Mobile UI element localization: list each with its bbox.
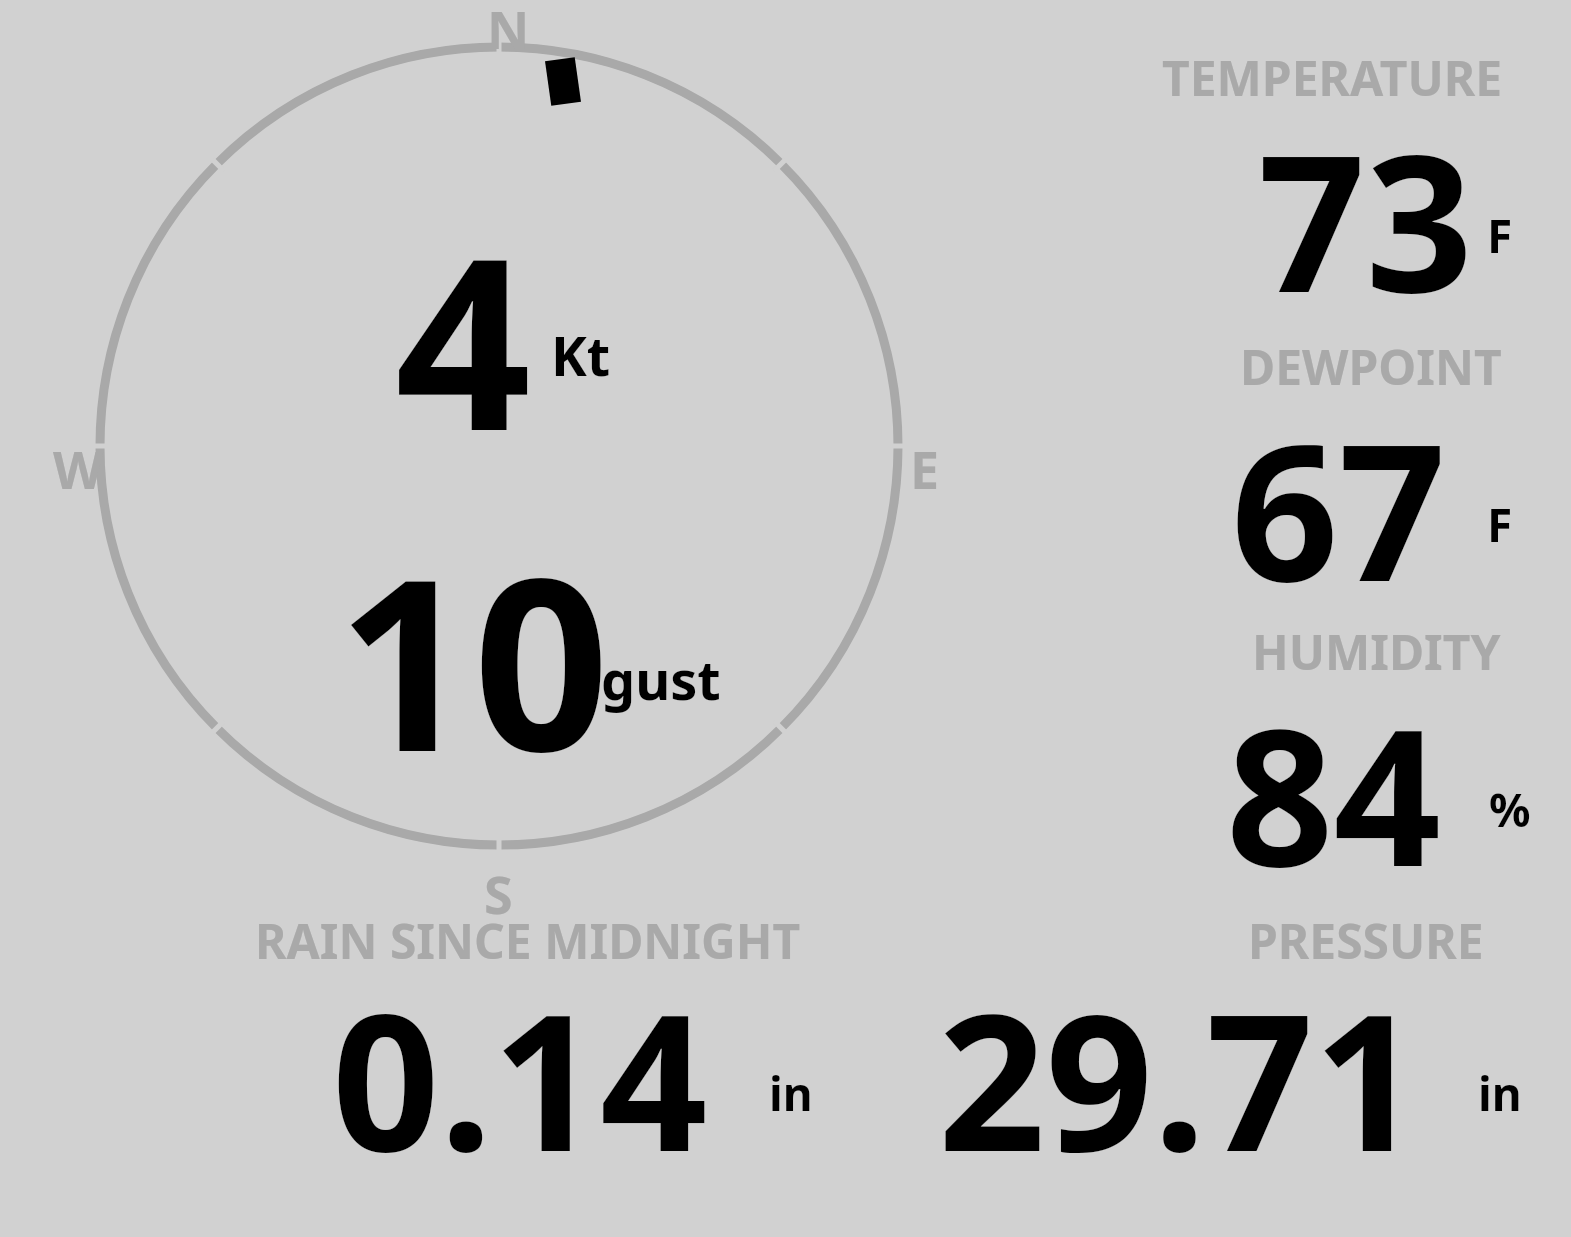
staticText: 84 bbox=[1226, 665, 1442, 921]
staticText: F bbox=[1487, 204, 1513, 267]
staticText: DEWPOINT bbox=[1240, 334, 1502, 399]
staticText: 0.14 bbox=[332, 950, 708, 1206]
staticText: RAIN SINCE MIDNIGHT bbox=[255, 908, 801, 973]
staticText: 29.71 bbox=[938, 950, 1421, 1206]
staticText: F bbox=[1487, 493, 1513, 556]
other: Wind direction compass dial bbox=[0, 0, 1571, 1237]
staticText: 67 bbox=[1231, 380, 1447, 636]
staticText: % bbox=[1489, 778, 1531, 841]
staticText: Kt bbox=[551, 318, 611, 392]
staticText: 10 bbox=[337, 497, 610, 821]
staticText: N bbox=[487, 0, 530, 64]
other: Current wind direction marker bbox=[545, 57, 581, 106]
staticText: 4 bbox=[395, 176, 532, 500]
staticText: in bbox=[1478, 1062, 1522, 1125]
staticText: 73 bbox=[1258, 91, 1474, 347]
staticText: gust bbox=[601, 642, 721, 716]
staticText: PRESSURE bbox=[1248, 908, 1484, 973]
staticText: E bbox=[910, 433, 940, 504]
staticText: W bbox=[53, 433, 104, 504]
staticText: in bbox=[769, 1062, 813, 1125]
staticText: HUMIDITY bbox=[1252, 619, 1501, 684]
staticText: TEMPERATURE bbox=[1162, 45, 1503, 110]
staticText: S bbox=[484, 858, 513, 929]
